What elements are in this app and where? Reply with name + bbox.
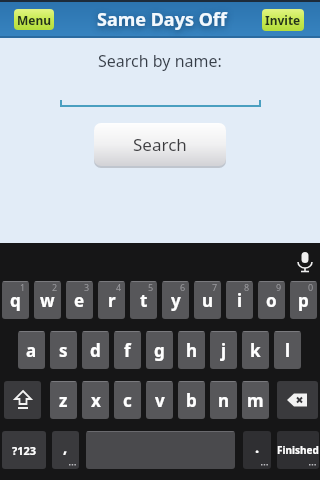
staticText: 7 [212,281,218,293]
staticText: v [155,389,165,412]
staticText: t [140,289,148,312]
staticText: 8 [244,281,250,293]
staticText: b [186,389,197,412]
button[interactable] [4,381,41,419]
button[interactable]: t [130,281,157,319]
button[interactable]: i [226,281,253,319]
button[interactable]: n [210,381,237,419]
button[interactable]: r [98,281,125,319]
button[interactable]: f [114,331,141,369]
staticText: Search by name: [98,50,222,72]
button[interactable]: y [162,281,189,319]
staticText: f [124,339,131,362]
staticText: 6 [180,281,186,293]
staticText: Finished [277,443,319,457]
button[interactable]: d [82,331,109,369]
button[interactable]: q [2,281,29,319]
button[interactable]: Menu [14,9,54,30]
button[interactable]: , [52,431,79,469]
staticText: 5 [148,281,154,293]
staticText: h [186,339,198,362]
staticText: n [218,389,230,412]
staticText: 0 [308,281,314,293]
button[interactable]: x [82,381,109,419]
button[interactable]: Invite [262,9,304,31]
button[interactable]: e [66,281,93,319]
staticText: x [91,389,101,412]
staticText: s [59,339,68,362]
staticText: Invite [265,12,301,28]
button[interactable]: m [242,381,269,419]
staticText: q [10,289,21,312]
button[interactable]: h [178,331,205,369]
button[interactable]: k [242,331,269,369]
staticText: , [63,437,68,457]
button[interactable] [86,431,235,469]
button[interactable]: a [18,331,45,369]
staticText: 9 [276,281,282,293]
staticText: c [123,389,132,412]
staticText: p [298,289,309,312]
staticText: r [108,289,116,312]
staticText: g [154,339,165,362]
staticText: Search [133,133,187,156]
button[interactable]: j [210,331,237,369]
staticText: w [40,289,55,312]
staticText: . [255,437,260,457]
button[interactable]: . [243,431,271,469]
staticText: ?123 [12,443,37,458]
staticText: 3 [84,281,90,293]
staticText: d [90,339,101,362]
staticText: u [202,289,214,312]
staticText: e [74,289,85,312]
button[interactable] [277,381,318,419]
button[interactable]: c [114,381,141,419]
staticText: k [250,339,261,362]
staticText: j [221,339,227,362]
staticText: Menu [17,12,52,28]
staticText: 1 [20,281,26,293]
staticText: z [59,389,68,412]
staticText: l [285,339,291,362]
staticText: 4 [116,281,122,293]
button[interactable]: v [146,381,173,419]
staticText: a [26,339,37,362]
button[interactable]: Finished [277,431,319,469]
button[interactable]: o [258,281,285,319]
staticText: i [237,289,243,312]
staticText: m [247,389,264,412]
button[interactable]: ?123 [2,431,46,469]
staticText: o [266,289,277,312]
staticText: Same Days Off [97,7,227,32]
button[interactable]: b [178,381,205,419]
button[interactable]: s [50,331,77,369]
button[interactable]: u [194,281,221,319]
staticText: 2 [52,281,58,293]
button[interactable]: l [274,331,301,369]
button[interactable]: g [146,331,173,369]
button[interactable]: p [290,281,317,319]
button[interactable]: Search [94,123,226,166]
staticText: y [171,289,181,312]
button[interactable]: z [50,381,77,419]
button[interactable]: w [34,281,61,319]
